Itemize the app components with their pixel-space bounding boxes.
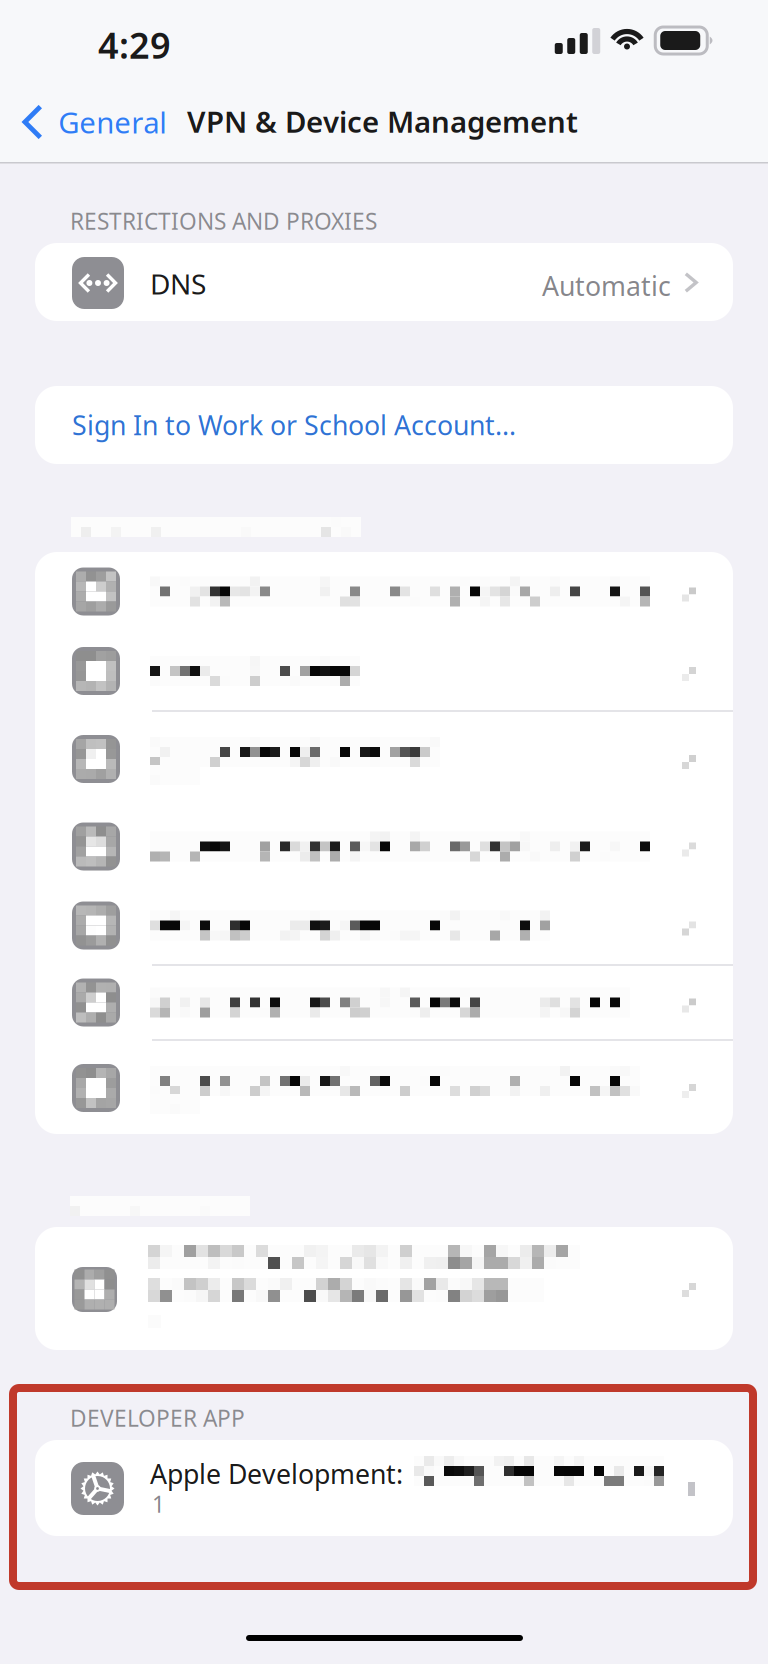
staticText: DEVELOPER APP <box>70 1403 245 1433</box>
button[interactable] <box>0 0 768 1664</box>
button[interactable] <box>0 0 768 1664</box>
button[interactable] <box>0 0 768 1664</box>
staticText: DNS <box>150 265 206 302</box>
button[interactable] <box>0 0 768 1664</box>
staticText: Sign In to Work or School Account… <box>72 407 516 443</box>
staticText: Apple Development: <box>150 1456 403 1491</box>
staticText: 1 <box>152 1489 165 1519</box>
button[interactable]: General <box>0 0 768 1664</box>
staticText: 4:29 <box>98 21 171 69</box>
button[interactable] <box>0 0 768 1664</box>
button[interactable] <box>0 0 768 1664</box>
button[interactable]: Sign In to Work or School Account… <box>0 0 768 1664</box>
staticText: RESTRICTIONS AND PROXIES <box>70 206 377 236</box>
button[interactable] <box>0 0 768 1664</box>
button[interactable] <box>0 0 768 1664</box>
button[interactable] <box>0 0 768 1664</box>
staticText: VPN & Device Management <box>187 102 578 141</box>
staticText: General <box>58 102 167 141</box>
button[interactable] <box>0 0 768 1664</box>
staticText: Automatic <box>542 268 671 303</box>
